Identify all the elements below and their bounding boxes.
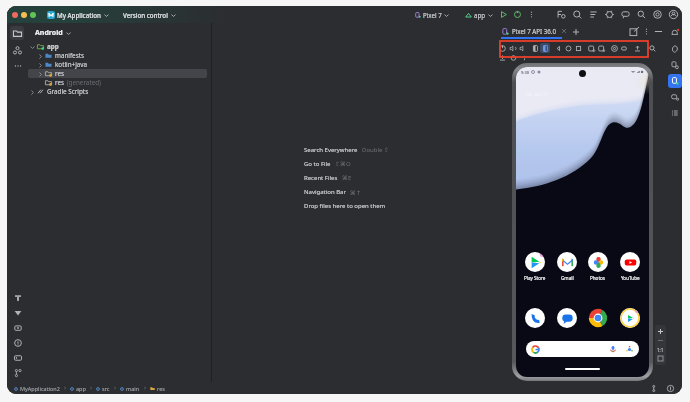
button[interactable]: res bbox=[28, 69, 207, 78]
button[interactable]: Screenshot bbox=[586, 43, 596, 53]
button[interactable]: main bbox=[119, 385, 141, 392]
button[interactable] bbox=[584, 308, 612, 328]
staticText: Recent Files bbox=[304, 174, 338, 182]
button[interactable]: Navigation Bar bbox=[304, 185, 362, 199]
button[interactable]: My Application bbox=[46, 10, 110, 20]
button[interactable]: YouTube bbox=[616, 252, 644, 281]
button[interactable]: Pixel 7 bbox=[413, 11, 451, 19]
button[interactable]: Zoom in bbox=[656, 327, 665, 336]
button[interactable]: Photos bbox=[584, 252, 612, 281]
staticText: res bbox=[55, 69, 65, 78]
button[interactable]: Search Everywhere bbox=[304, 143, 389, 157]
button[interactable]: Gemini bbox=[572, 9, 583, 20]
button[interactable]: Rotate left bbox=[530, 43, 540, 53]
button[interactable]: Volume up bbox=[507, 43, 517, 53]
button[interactable]: Upload bbox=[632, 43, 642, 53]
staticText: Photos bbox=[590, 275, 606, 281]
button[interactable]: Upload bbox=[497, 55, 507, 61]
staticText: Pixel 7 bbox=[423, 11, 442, 19]
button[interactable]: Back up bbox=[508, 55, 518, 61]
button[interactable]: Notifications bbox=[668, 26, 682, 40]
button[interactable]: Hide bbox=[653, 26, 664, 37]
button[interactable]: kotlin+java bbox=[28, 60, 207, 69]
button[interactable]: Options bbox=[641, 26, 652, 37]
button[interactable]: Play Store bbox=[521, 252, 549, 281]
button[interactable]: Zoom level bbox=[656, 345, 665, 354]
button[interactable]: Gradle Scripts bbox=[28, 87, 207, 96]
button[interactable]: Search bbox=[636, 9, 647, 20]
button[interactable]: Debug bbox=[512, 9, 523, 20]
button[interactable]: Gemini bbox=[668, 42, 682, 56]
button[interactable]: app bbox=[463, 11, 495, 19]
button[interactable]: More tool windows bbox=[12, 60, 23, 71]
button[interactable]: Problems bbox=[10, 335, 25, 350]
staticText: (generated) bbox=[65, 78, 101, 87]
button[interactable]: Android bbox=[35, 27, 71, 39]
button[interactable]: res bbox=[28, 78, 207, 87]
button[interactable]: Build bbox=[10, 290, 25, 305]
button[interactable]: Gradle bbox=[604, 9, 615, 20]
button[interactable]: manifests bbox=[28, 51, 207, 60]
button[interactable] bbox=[521, 308, 549, 328]
button[interactable]: Power bbox=[497, 43, 507, 53]
button[interactable]: Back bbox=[553, 43, 563, 53]
button[interactable]: Pixel 7 API 36.0 bbox=[502, 27, 557, 35]
button[interactable]: Commit bbox=[10, 43, 24, 57]
button[interactable] bbox=[526, 341, 639, 357]
button[interactable]: Fit bbox=[656, 354, 665, 363]
button[interactable]: More bbox=[526, 9, 537, 20]
button[interactable]: Device Mirroring bbox=[668, 90, 682, 104]
button[interactable]: Running Devices bbox=[668, 74, 682, 88]
button[interactable]: Add device bbox=[571, 27, 580, 36]
button[interactable]: Rotate right bbox=[540, 43, 550, 53]
button[interactable]: Window button bbox=[30, 12, 36, 18]
button[interactable]: Device Manager bbox=[668, 58, 682, 72]
button[interactable]: Open in new window bbox=[629, 26, 640, 37]
staticText: Pixel 7 API 36.0 bbox=[512, 27, 557, 35]
button[interactable]: Power save bbox=[665, 383, 676, 394]
button[interactable]: Volume down bbox=[517, 43, 527, 53]
button[interactable]: More bbox=[519, 55, 529, 61]
button[interactable]: Version Control bbox=[10, 365, 25, 380]
button[interactable]: Build Variants bbox=[668, 106, 682, 120]
button[interactable]: App Inspection bbox=[10, 320, 25, 335]
staticText: app bbox=[47, 42, 59, 51]
button[interactable]: Version control bbox=[122, 10, 177, 20]
button[interactable]: Gmail bbox=[553, 252, 581, 281]
button[interactable]: Zoom out bbox=[656, 336, 665, 345]
staticText: app bbox=[474, 11, 486, 19]
button[interactable]: Go to File bbox=[304, 157, 351, 171]
button[interactable]: Branch bbox=[650, 383, 661, 394]
button[interactable]: Run bbox=[498, 9, 509, 20]
button[interactable]: Terminal bbox=[10, 350, 25, 365]
button[interactable]: Code bbox=[556, 9, 567, 20]
button[interactable]: Display mode bbox=[619, 43, 629, 53]
button[interactable]: Record screen bbox=[596, 43, 606, 53]
button[interactable]: Chat bbox=[620, 9, 631, 20]
button[interactable]: app bbox=[69, 385, 87, 392]
button[interactable]: res bbox=[149, 385, 166, 392]
button[interactable]: Extended controls bbox=[609, 43, 619, 53]
staticText: res bbox=[55, 78, 65, 87]
staticText: app bbox=[76, 385, 86, 392]
button[interactable]: Problems bbox=[588, 9, 599, 20]
button[interactable]: app bbox=[28, 42, 207, 51]
button[interactable]: App Quality bbox=[10, 305, 25, 320]
staticText: Android bbox=[35, 28, 63, 38]
button[interactable]: MyApplication2 bbox=[13, 385, 61, 392]
button[interactable] bbox=[553, 308, 581, 328]
button[interactable]: Recent Files bbox=[304, 171, 352, 185]
button[interactable]: src bbox=[95, 385, 111, 392]
button[interactable]: Project bbox=[10, 26, 24, 40]
button[interactable]: Window button bbox=[21, 12, 27, 18]
button[interactable]: Account bbox=[668, 9, 679, 20]
button[interactable]: Zoom bbox=[647, 43, 657, 53]
button[interactable]: Window button bbox=[12, 12, 18, 18]
button[interactable]: Close tab bbox=[560, 27, 568, 35]
staticText: MyApplication2 bbox=[20, 385, 60, 392]
button[interactable]: Settings bbox=[652, 9, 663, 20]
button[interactable] bbox=[616, 308, 644, 328]
button[interactable]: Overview bbox=[573, 43, 583, 53]
button[interactable]: Home bbox=[563, 43, 573, 53]
staticText: 1:1 bbox=[657, 347, 664, 353]
